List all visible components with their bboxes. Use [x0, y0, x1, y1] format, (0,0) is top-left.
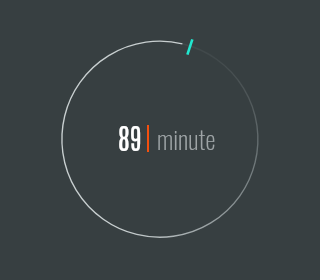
staticText: 89 — [118, 119, 142, 155]
staticText: minute — [157, 119, 216, 158]
